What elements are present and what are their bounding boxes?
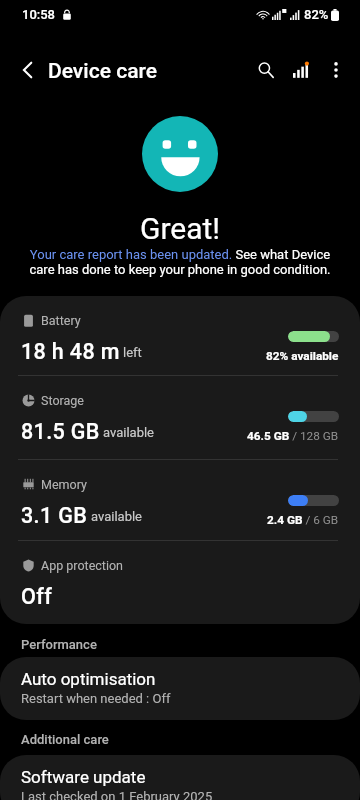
staticText: Battery bbox=[41, 313, 81, 328]
button[interactable]: Memory bbox=[0, 460, 360, 540]
button[interactable]: Navigate up bbox=[0, 44, 52, 96]
staticText: 3.1 GB bbox=[21, 503, 88, 528]
button[interactable]: Battery bbox=[0, 296, 360, 375]
staticText: 46.5 GB / 128 GB bbox=[247, 429, 339, 443]
staticText: Additional care bbox=[21, 732, 109, 747]
staticText: available bbox=[91, 509, 142, 524]
staticText: 82% bbox=[304, 7, 329, 22]
staticText: Auto optimisation bbox=[21, 669, 156, 689]
button[interactable]: Storage bbox=[0, 376, 360, 459]
button[interactable]: App protection bbox=[0, 541, 360, 624]
staticText: 18 h 48 m bbox=[21, 339, 120, 364]
button[interactable]: Search bbox=[249, 53, 283, 87]
staticText: Restart when needed : Off bbox=[21, 691, 171, 706]
staticText: 81.5 GB bbox=[21, 419, 100, 444]
staticText: 82% available bbox=[266, 349, 339, 363]
staticText: Great! bbox=[140, 211, 221, 246]
staticText: Off bbox=[21, 584, 53, 609]
button[interactable]: More options bbox=[319, 53, 353, 87]
button[interactable]: Usage statistics bbox=[284, 53, 318, 87]
staticText: Memory bbox=[41, 477, 87, 492]
button[interactable]: Software update bbox=[0, 755, 360, 800]
staticText: 10:58 bbox=[22, 7, 56, 22]
button[interactable]: Auto optimisation bbox=[0, 657, 360, 720]
staticText: App protection bbox=[41, 558, 123, 573]
staticText: Performance bbox=[21, 637, 97, 652]
staticText: 2.4 GB / 6 GB bbox=[267, 513, 339, 527]
staticText: Software update bbox=[21, 767, 146, 787]
staticText: Storage bbox=[41, 393, 84, 408]
staticText: Your care report has been updated. See w… bbox=[25, 247, 335, 277]
staticText: Device care bbox=[48, 59, 157, 84]
staticText: left bbox=[123, 345, 142, 360]
staticText: available bbox=[103, 425, 154, 440]
staticText: Last checked on 1 February 2025 bbox=[21, 789, 213, 800]
